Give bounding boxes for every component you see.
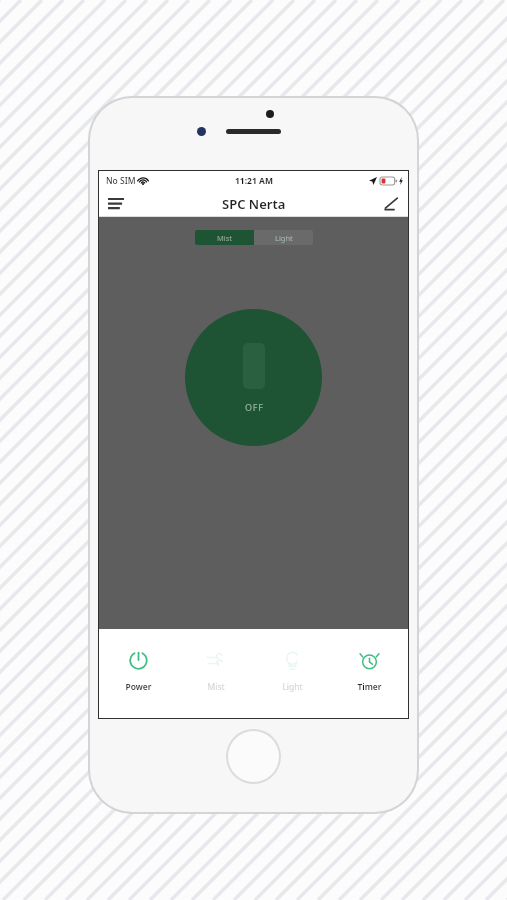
- staticText: 11:21 AM: [235, 175, 273, 187]
- button[interactable]: Timer: [331, 629, 408, 718]
- staticText: Power: [125, 681, 152, 693]
- button[interactable]: Light: [254, 230, 313, 245]
- staticText: Light: [275, 233, 293, 243]
- button[interactable]: Mist: [195, 230, 254, 245]
- staticText: Mist: [217, 233, 233, 243]
- staticText: SPC Nerta: [222, 195, 286, 213]
- staticText: Light: [282, 681, 303, 693]
- button[interactable]: Mist: [177, 629, 254, 718]
- staticText: Mist: [207, 681, 225, 693]
- staticText: No SIM: [106, 175, 136, 187]
- button[interactable]: Edit: [374, 190, 408, 217]
- staticText: OFF: [245, 401, 264, 413]
- button[interactable]: Power toggle, OFF: [185, 309, 322, 446]
- button[interactable]: Menu: [99, 190, 133, 217]
- staticText: Timer: [357, 681, 382, 693]
- button[interactable]: Power: [99, 629, 177, 718]
- button[interactable]: Light: [254, 629, 331, 718]
